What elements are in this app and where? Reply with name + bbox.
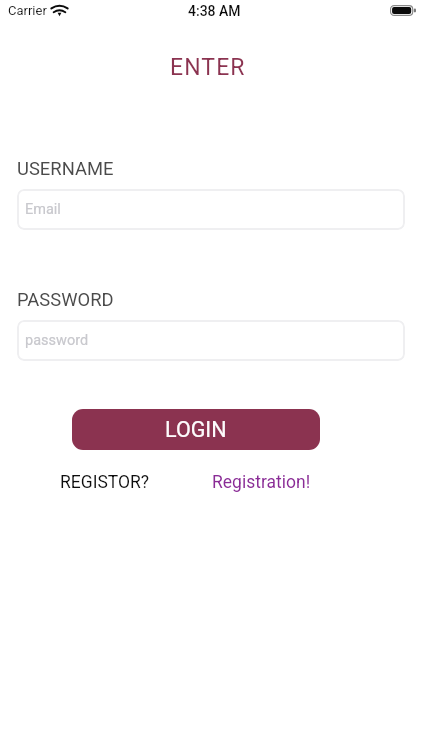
staticText: PASSWORD [17,289,114,311]
staticText: Carrier [8,3,47,18]
other: Battery full [390,5,416,16]
button[interactable]: REGISTOR? [60,472,150,493]
staticText: ENTER [170,54,246,81]
staticText: USERNAME [17,158,114,180]
button[interactable]: password [17,320,405,361]
staticText: LOGIN [165,417,227,442]
staticText: Email [25,201,61,218]
button[interactable]: Registration! [212,472,311,493]
button[interactable]: Email [17,189,405,230]
staticText: 4:38 AM [188,3,241,19]
staticText: password [25,332,89,349]
other: Wi-Fi signal [53,5,66,16]
button[interactable]: LOGIN [72,409,320,450]
